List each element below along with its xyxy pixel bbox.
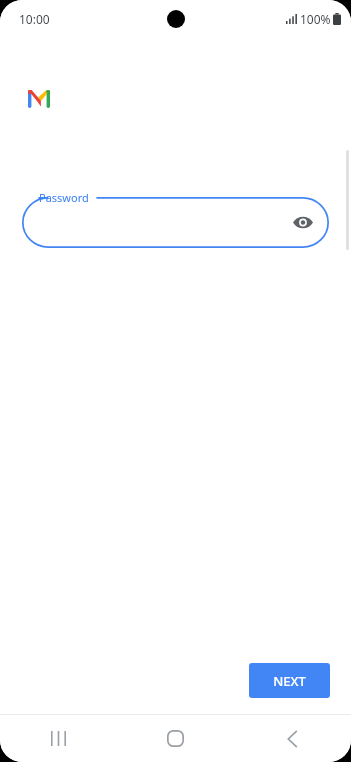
staticText: NEXT (273, 672, 306, 690)
button[interactable]: Home (117, 715, 234, 762)
button[interactable]: NEXT (249, 663, 330, 698)
staticText: 10:00 (19, 11, 50, 27)
button[interactable]: Recent apps (0, 715, 117, 762)
button[interactable]: Back (234, 715, 351, 762)
button[interactable]: Show password (289, 208, 317, 236)
staticText: Password (39, 190, 89, 205)
staticText: 100% (300, 11, 331, 27)
button[interactable]: Password (22, 188, 329, 248)
